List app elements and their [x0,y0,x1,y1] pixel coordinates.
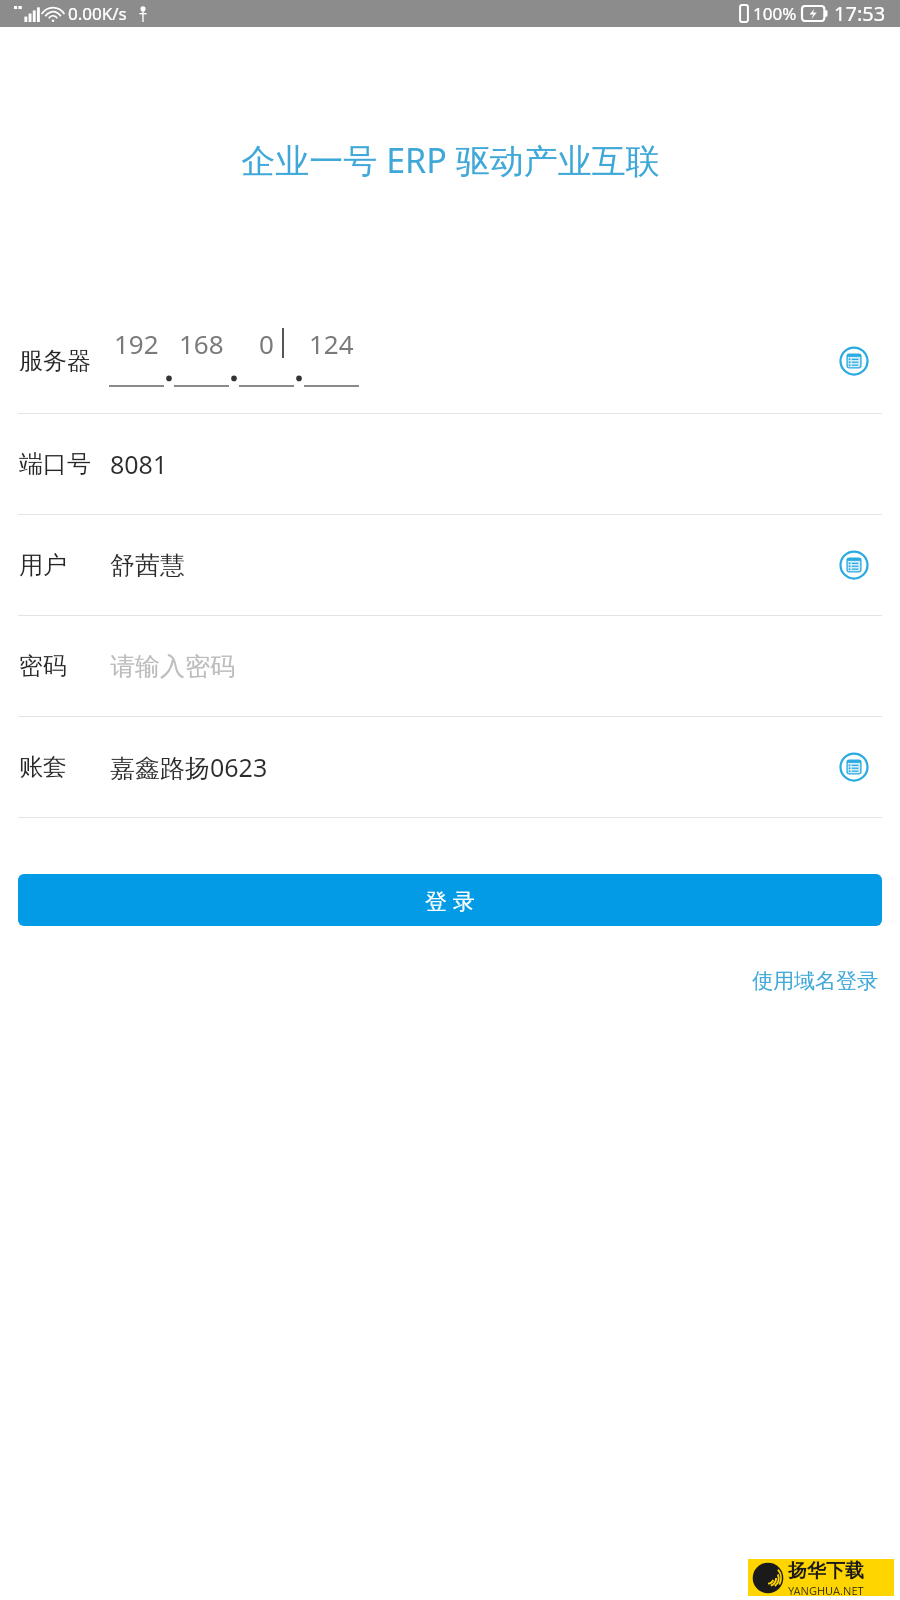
staticText: 密码 [19,651,67,681]
button[interactable]: 用户 [0,515,900,615]
staticText: 124 [309,326,354,361]
staticText: 扬华下载 [788,1559,864,1583]
button[interactable]: 选择 [839,550,869,580]
button[interactable]: 端口号 [0,414,900,514]
button[interactable]: 登 录 [18,874,882,926]
staticText: 17:53 [834,0,886,27]
staticText: 服务器 [19,346,91,376]
button[interactable]: 选择 [839,346,869,376]
staticText: 舒茜慧 [110,550,185,581]
staticText: 请输入密码 [110,651,235,682]
staticText: 端口号 [19,449,91,479]
staticText: 0.00K/s [68,2,127,25]
staticText: 192 [114,326,159,361]
staticText: 168 [179,326,224,361]
button[interactable]: 服务器 [0,315,900,413]
staticText: 用户 [19,550,67,580]
staticText: 100% [753,2,797,25]
button[interactable]: 账套 [0,717,900,817]
staticText: 0 [259,326,274,361]
staticText: 嘉鑫路扬0623 [110,750,268,784]
staticText: 登 录 [425,885,475,915]
staticText: 使用域名登录 [752,968,878,994]
button[interactable]: 密码 [0,616,900,716]
staticText: 8081 [110,447,168,481]
button[interactable]: 选择 [839,752,869,782]
button[interactable]: 扬华下载 [748,1559,894,1596]
button[interactable]: 使用域名登录 [748,964,882,998]
staticText: 账套 [19,752,67,782]
staticText: 企业一号 ERP 驱动产业互联 [241,137,660,183]
staticText: YANGHUA.NET [788,1583,864,1596]
